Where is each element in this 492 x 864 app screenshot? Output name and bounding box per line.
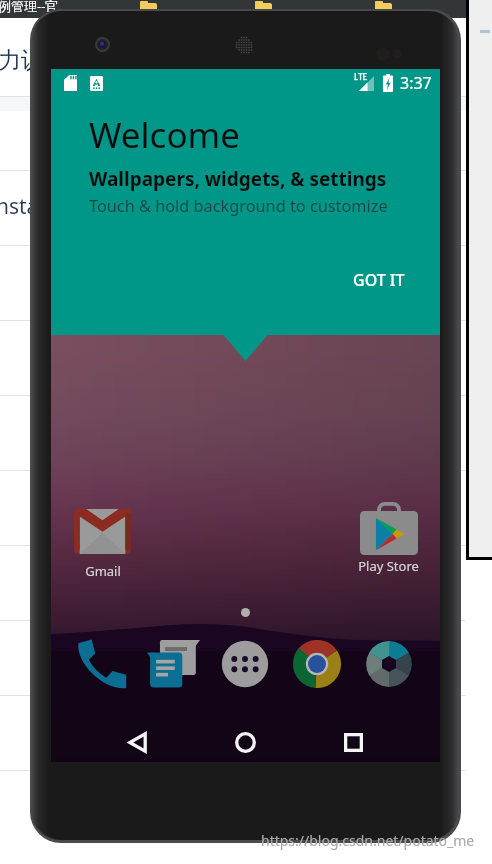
staticText: 例管理--官... <box>0 0 69 15</box>
staticText: Touch & hold background to customize <box>89 195 388 217</box>
staticText: Welcome <box>89 111 241 159</box>
staticText: GOT IT <box>353 269 405 291</box>
staticText: 力认 <box>0 46 44 75</box>
button[interactable]: Play Store <box>351 502 426 575</box>
button[interactable]: GOT IT <box>339 259 419 301</box>
button[interactable]: Home <box>221 718 269 766</box>
button[interactable]: Back <box>113 718 161 766</box>
staticText: 3:37 <box>400 72 432 94</box>
staticText: Wallpapers, widgets, & settings <box>89 166 387 192</box>
staticText: https://blog.csdn.net/potato_me <box>261 831 475 850</box>
button[interactable]: Gmail <box>65 509 140 580</box>
button[interactable]: Chrome <box>291 638 343 690</box>
button[interactable]: Camera <box>363 638 415 690</box>
staticText: Gmail <box>85 562 121 580</box>
button[interactable]: All apps <box>219 638 271 690</box>
staticText: nsta <box>0 192 39 221</box>
button[interactable]: Recents <box>329 718 377 766</box>
button[interactable]: Phone <box>76 638 128 690</box>
staticText: Play Store <box>358 557 419 575</box>
button[interactable]: Messages <box>148 638 200 690</box>
